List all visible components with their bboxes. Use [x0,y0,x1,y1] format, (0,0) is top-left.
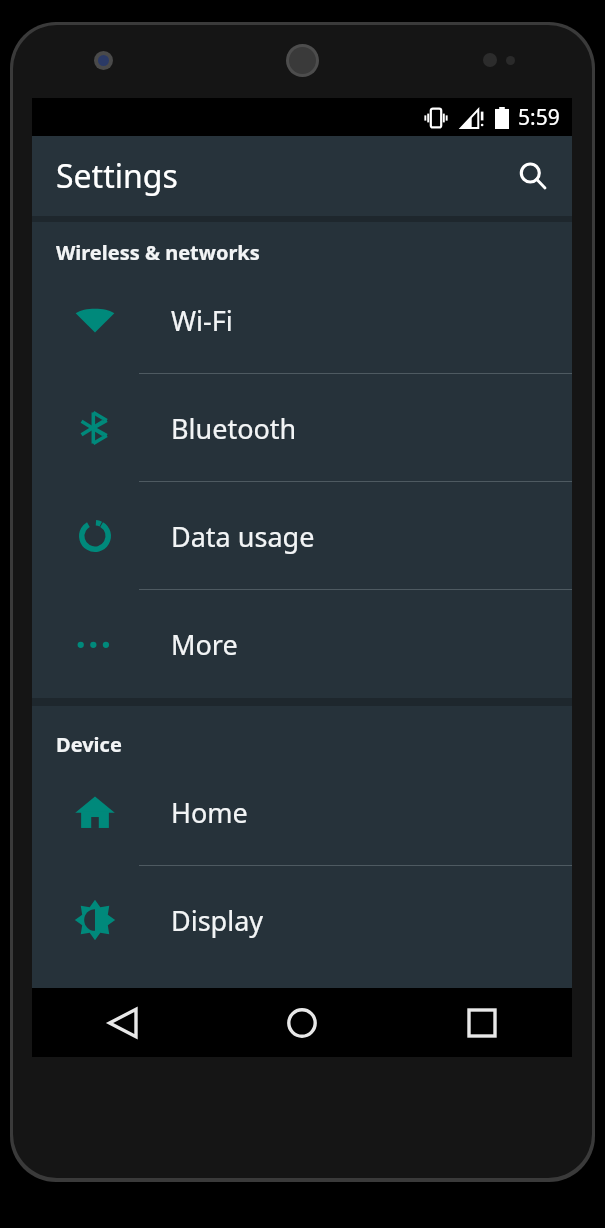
button[interactable]: Search [507,150,559,202]
button[interactable]: Wi-Fi [32,266,572,374]
staticText: Data usage [171,518,315,555]
staticText: Settings [56,154,178,198]
button[interactable]: Home [212,988,392,1057]
staticText: Device [56,731,122,758]
button[interactable]: Bluetooth [32,374,572,482]
button[interactable]: Display [32,866,572,974]
button[interactable]: Recent apps [392,988,572,1057]
staticText: 5:59 [518,103,560,132]
staticText: Wi-Fi [171,302,233,339]
button[interactable]: Back [32,988,212,1057]
staticText: Wireless & networks [56,239,260,266]
staticText: Display [171,902,264,939]
staticText: Bluetooth [171,410,297,447]
staticText: Home [171,794,248,831]
button[interactable]: More [32,590,572,698]
staticText: More [171,626,238,663]
button[interactable]: Data usage [32,482,572,590]
button[interactable]: Home [32,758,572,866]
